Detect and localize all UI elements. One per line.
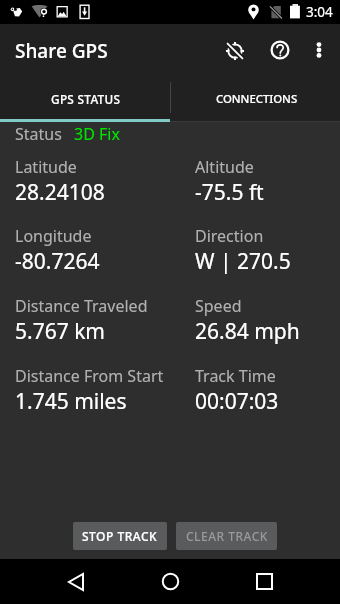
button[interactable]: More options: [299, 30, 339, 70]
button[interactable]: Recents: [240, 559, 288, 604]
staticText: 3D Fix: [74, 123, 120, 145]
staticText: Share GPS: [15, 38, 108, 64]
button[interactable]: GPS STATUS: [0, 78, 170, 122]
staticText: 1.745 miles: [15, 387, 127, 416]
staticText: Status: [15, 123, 62, 145]
staticText: W | 270.5: [195, 247, 291, 276]
staticText: Latitude: [15, 156, 77, 178]
button[interactable]: Back: [52, 559, 100, 604]
button[interactable]: Help: [257, 27, 302, 72]
staticText: Distance From Start: [15, 365, 164, 387]
staticText: Altitude: [195, 156, 254, 178]
staticText: 28.24108: [15, 178, 105, 207]
button[interactable]: Toggle GPS: [212, 28, 257, 73]
staticText: STOP TRACK: [82, 528, 158, 544]
staticText: Speed: [195, 295, 242, 317]
staticText: 00:07:03: [195, 387, 279, 416]
staticText: 5.767 km: [15, 317, 105, 346]
staticText: Distance Traveled: [15, 295, 148, 317]
staticText: GPS STATUS: [51, 91, 121, 107]
button[interactable]: CLEAR TRACK: [176, 522, 277, 550]
button[interactable]: CONNECTIONS: [170, 78, 340, 122]
button[interactable]: STOP TRACK: [73, 522, 167, 550]
staticText: -80.7264: [15, 247, 100, 276]
staticText: 3:04: [306, 3, 333, 21]
button[interactable]: Home: [146, 559, 194, 604]
staticText: CONNECTIONS: [216, 91, 298, 107]
staticText: -75.5 ft: [195, 178, 264, 207]
staticText: Longitude: [15, 225, 92, 247]
staticText: Track Time: [195, 365, 276, 387]
staticText: Direction: [195, 225, 264, 247]
staticText: 26.84 mph: [195, 317, 300, 346]
staticText: CLEAR TRACK: [186, 528, 268, 544]
